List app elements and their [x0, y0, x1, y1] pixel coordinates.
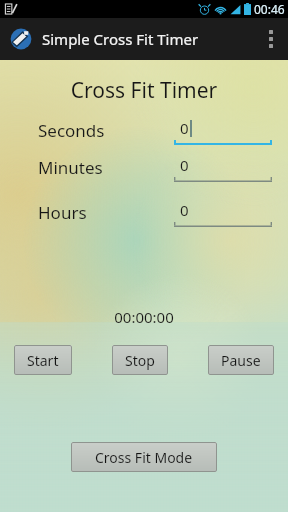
button[interactable]: Pause [208, 345, 274, 375]
staticText: Seconds [38, 119, 105, 142]
staticText: Simple Cross Fit Timer [42, 29, 199, 49]
staticText: 00:00:00 [0, 307, 288, 327]
staticText: 0 [180, 155, 189, 175]
staticText: Pause [221, 351, 261, 370]
staticText: Cross Fit Mode [95, 448, 193, 467]
button[interactable]: 0 [174, 117, 272, 145]
staticText: 0 [180, 118, 189, 138]
button[interactable]: Stop [112, 345, 168, 375]
button[interactable]: 0 [174, 199, 272, 227]
staticText: Minutes [38, 156, 103, 179]
button[interactable]: Cross Fit Mode [71, 442, 217, 472]
staticText: 0 [180, 200, 189, 220]
button[interactable]: Start [14, 345, 72, 375]
staticText: 00:46 [254, 1, 285, 17]
staticText: Start [27, 351, 59, 370]
staticText: Cross Fit Timer [0, 76, 288, 105]
staticText: Stop [125, 351, 155, 370]
staticText: Hours [38, 201, 87, 224]
button[interactable]: More options [254, 18, 288, 60]
button[interactable]: 0 [174, 154, 272, 182]
